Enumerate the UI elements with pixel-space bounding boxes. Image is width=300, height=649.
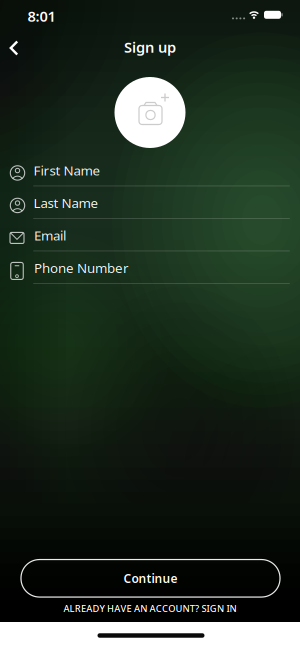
staticText: Last Name	[33, 194, 98, 212]
button[interactable]: Add photo	[114, 77, 185, 148]
button[interactable]: Last Name	[0, 191, 300, 224]
staticText: 8:01	[27, 6, 55, 26]
button[interactable]: Phone Number	[0, 256, 300, 289]
button[interactable]: First Name	[0, 159, 300, 191]
button[interactable]: Email	[0, 224, 300, 256]
staticText: Sign up	[124, 37, 176, 57]
button[interactable]: ALREADY HAVE AN ACCOUNT? SIGN IN	[63, 602, 237, 615]
staticText: Continue	[123, 570, 177, 586]
staticText: Phone Number	[34, 259, 129, 277]
staticText: Email	[34, 227, 66, 244]
staticText: ALREADY HAVE AN ACCOUNT? SIGN IN	[63, 602, 237, 615]
button[interactable]: Continue	[21, 559, 280, 597]
staticText: First Name	[33, 162, 100, 179]
button[interactable]: Back	[0, 33, 29, 62]
